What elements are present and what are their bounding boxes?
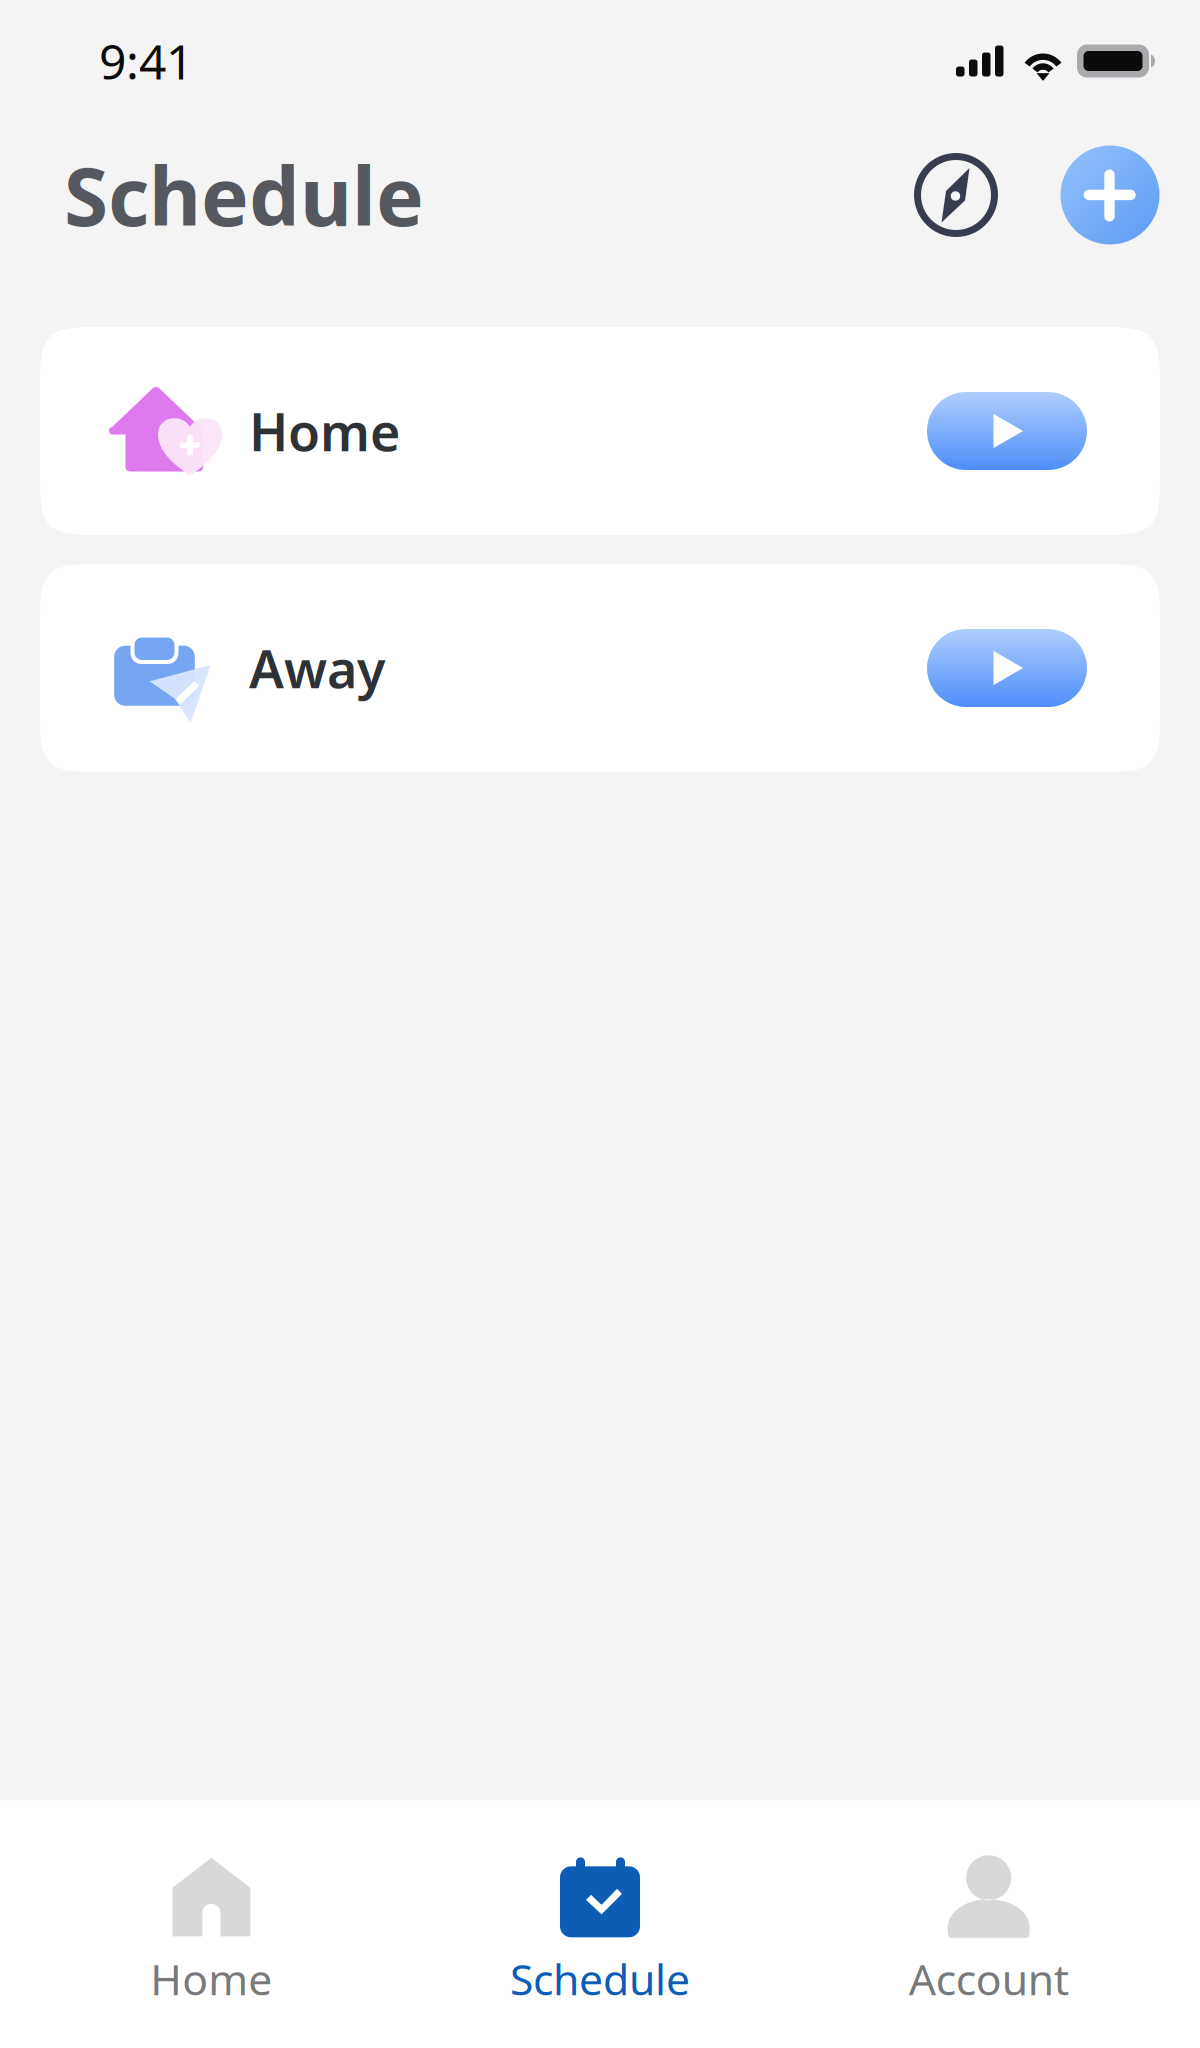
staticText: Home [249, 396, 400, 466]
button[interactable]: Explore [904, 143, 1008, 247]
button[interactable]: Home [17, 1800, 406, 2048]
staticText: Schedule [510, 1950, 690, 2007]
staticText: Away [249, 633, 385, 703]
staticText: Home [150, 1950, 272, 2007]
staticText: Schedule [64, 142, 424, 248]
button[interactable]: Add [1058, 143, 1162, 247]
button[interactable]: Account [794, 1800, 1183, 2048]
button[interactable]: Away [40, 564, 1160, 772]
button[interactable]: Home [40, 327, 1160, 535]
button[interactable]: Schedule [406, 1800, 794, 2048]
staticText: 9:41 [99, 29, 193, 93]
staticText: Account [909, 1950, 1069, 2007]
